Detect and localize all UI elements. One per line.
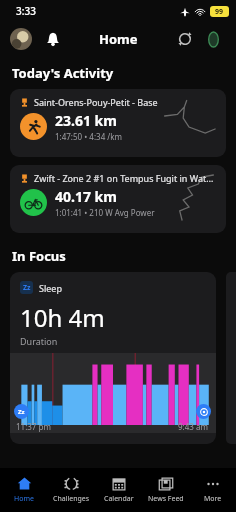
staticText: Today's Activity [12, 64, 114, 82]
button[interactable]: Notifications [40, 26, 66, 52]
button[interactable]: Profile [10, 28, 32, 50]
staticText: 11:37 pm [16, 421, 51, 432]
staticText: Zz [23, 283, 31, 293]
staticText: 1:01:41 • 210 W Avg Power [55, 207, 155, 218]
staticText: In Focus [12, 247, 66, 265]
staticText: 9:43 am [178, 421, 208, 432]
staticText: Zz [18, 408, 25, 416]
staticText: Sleep [39, 282, 62, 294]
button[interactable]: Activity [200, 26, 226, 52]
staticText: Zwift - Zone 2 #1 on Tempus Fugit in Wat… [34, 172, 214, 184]
staticText: 1:47:50 • 4:34 /km [55, 131, 123, 142]
button[interactable]: News Feed [142, 468, 189, 512]
staticText: Home [99, 30, 138, 48]
staticText: Duration [20, 335, 58, 347]
button[interactable]: Zz [10, 272, 216, 444]
staticText: Home [14, 494, 34, 504]
staticText: 23.61 km [55, 111, 117, 130]
staticText: Saint-Orens-Pouy-Petit - Base [34, 96, 158, 108]
button[interactable]: Zwift - Zone 2 #1 on Tempus Fugit in Wat… [10, 165, 226, 233]
staticText: Calendar [104, 494, 134, 504]
button[interactable]: Sync [172, 26, 198, 52]
staticText: Challenges [53, 494, 90, 504]
staticText: More [204, 494, 222, 504]
button[interactable]: More [189, 468, 236, 512]
staticText: 3:33 [16, 4, 36, 18]
button[interactable]: Calendar [95, 468, 142, 512]
staticText: 99 [215, 7, 224, 17]
staticText: 10h 4m [20, 301, 105, 334]
staticText: News Feed [148, 494, 184, 504]
button[interactable]: Challenges [48, 468, 95, 512]
button[interactable]: Saint-Orens-Pouy-Petit - Base [10, 89, 226, 157]
button[interactable]: Home [0, 468, 48, 512]
staticText: 40.17 km [55, 187, 117, 206]
